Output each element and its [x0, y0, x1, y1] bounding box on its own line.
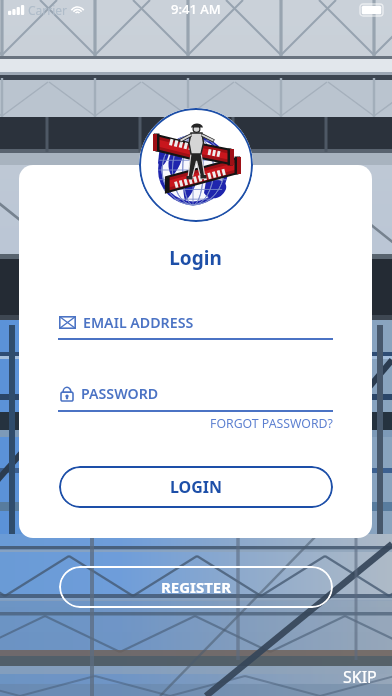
staticText: PASSWORD: [81, 384, 159, 403]
button[interactable]: SKIP: [343, 666, 377, 688]
button[interactable]: LOGIN: [59, 466, 333, 508]
staticText: LOGIN: [170, 476, 223, 498]
staticText: Login: [19, 245, 372, 271]
staticText: Carrier: [28, 2, 68, 18]
staticText: SKIP: [343, 666, 377, 688]
staticText: EMAIL ADDRESS: [83, 313, 194, 332]
staticText: 9:41 AM: [171, 0, 221, 18]
other: Email: [59, 316, 76, 329]
staticText: REGISTER: [161, 577, 232, 597]
button[interactable]: REGISTER: [59, 566, 333, 608]
button[interactable]: FORGOT PASSWORD?: [210, 415, 333, 432]
other: Password: [60, 385, 74, 402]
